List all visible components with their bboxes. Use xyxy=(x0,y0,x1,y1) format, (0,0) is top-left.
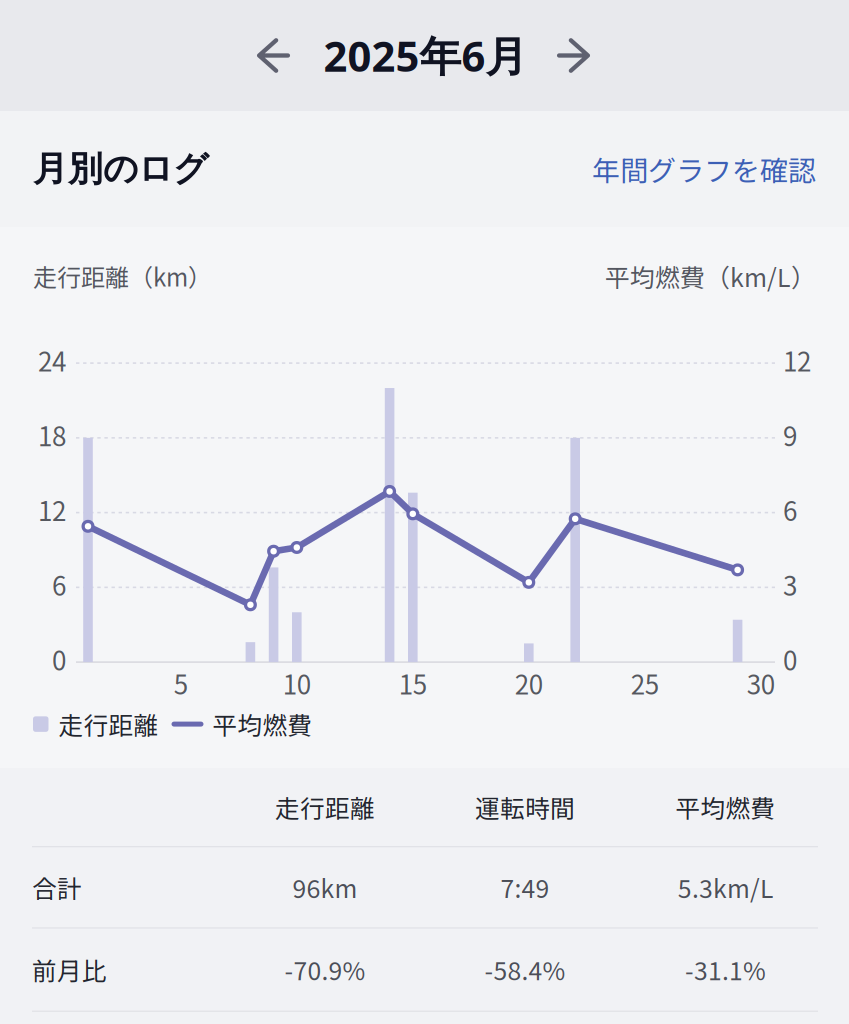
staticText: 0 xyxy=(52,640,66,678)
button[interactable]: 年間グラフを確認 xyxy=(592,149,816,189)
staticText: 走行距離（km） xyxy=(33,259,212,293)
staticText: 96km xyxy=(292,869,357,905)
staticText: 月別のログ xyxy=(33,147,208,191)
staticText: 7:49 xyxy=(500,869,549,905)
staticText: 30 xyxy=(747,664,775,702)
staticText: 20 xyxy=(515,664,543,702)
staticText: 25 xyxy=(631,664,659,702)
staticText: 24 xyxy=(38,341,66,379)
staticText: 5.3km/L xyxy=(678,869,773,905)
staticText: 15 xyxy=(399,664,427,702)
staticText: 12 xyxy=(783,341,811,379)
staticText: 運転時間 xyxy=(475,789,575,825)
staticText: 平均燃費 xyxy=(212,706,312,742)
staticText: 6 xyxy=(783,491,797,528)
staticText: -58.4% xyxy=(484,952,565,987)
staticText: -31.1% xyxy=(685,952,766,987)
staticText: 6 xyxy=(52,565,66,603)
staticText: 18 xyxy=(38,416,66,454)
staticText: 9 xyxy=(783,416,797,454)
staticText: 合計 xyxy=(32,869,82,905)
staticText: -70.9% xyxy=(284,952,365,987)
staticText: 走行距離 xyxy=(58,706,158,742)
staticText: 12 xyxy=(38,491,66,528)
staticText: 2025年6月 xyxy=(323,27,527,84)
staticText: 平均燃費（km/L） xyxy=(605,258,816,294)
button[interactable]: Next month xyxy=(538,22,612,88)
staticText: 3 xyxy=(783,565,797,603)
button[interactable]: Previous month xyxy=(236,22,307,88)
staticText: 10 xyxy=(283,664,311,702)
staticText: 平均燃費 xyxy=(675,789,775,825)
staticText: 走行距離 xyxy=(275,789,375,825)
staticText: 前月比 xyxy=(32,952,107,987)
staticText: 5 xyxy=(174,664,188,702)
staticText: 0 xyxy=(783,640,797,678)
staticText: 年間グラフを確認 xyxy=(592,149,816,189)
